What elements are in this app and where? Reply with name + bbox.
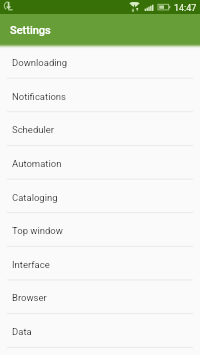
staticText: Top window [12, 225, 63, 236]
button[interactable]: Downloading [0, 45, 200, 79]
button[interactable]: Scheduler [0, 112, 200, 146]
button[interactable]: Browser [0, 280, 200, 314]
staticText: Automation [12, 158, 62, 169]
staticText: Browser [12, 292, 47, 303]
staticText: Cataloging [12, 192, 58, 203]
button[interactable]: Cataloging [0, 180, 200, 214]
button[interactable]: Automation [0, 146, 200, 180]
staticText: Interface [12, 259, 50, 270]
staticText: 14:47 [174, 3, 197, 14]
button[interactable]: Interface [0, 247, 200, 281]
button[interactable]: Data [0, 314, 200, 348]
staticText: Scheduler [12, 124, 55, 135]
staticText: Downloading [12, 57, 68, 68]
staticText: Data [12, 326, 32, 337]
button[interactable]: Notifications [0, 79, 200, 113]
staticText: Notifications [12, 91, 67, 102]
button[interactable]: Top window [0, 213, 200, 247]
staticText: Settings [10, 24, 51, 37]
